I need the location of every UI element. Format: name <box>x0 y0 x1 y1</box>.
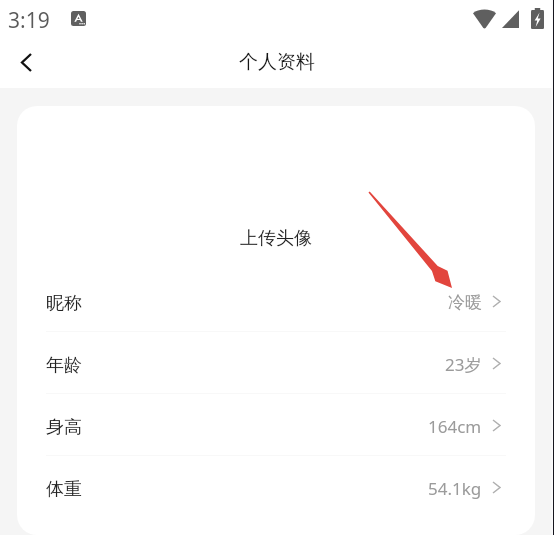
staticText: 164cm <box>428 415 482 438</box>
staticText: 昵称 <box>46 292 82 315</box>
staticText: 年龄 <box>46 354 82 377</box>
button[interactable]: 身高 <box>17 394 535 456</box>
staticText: 体重 <box>46 478 82 501</box>
staticText: 冷暖 <box>448 292 482 313</box>
button[interactable]: 昵称 <box>17 270 535 332</box>
button[interactable]: 体重 <box>17 456 535 518</box>
staticText: 身高 <box>46 416 82 439</box>
button[interactable]: Back <box>4 40 48 84</box>
staticText: 个人资料 <box>239 50 315 74</box>
staticText: 23岁 <box>445 353 482 376</box>
staticText: 上传头像 <box>240 227 312 250</box>
staticText: 54.1kg <box>428 477 482 500</box>
button[interactable]: 年龄 <box>17 332 535 394</box>
staticText: 3:19 <box>8 6 50 35</box>
button[interactable]: 上传头像 <box>17 106 535 270</box>
